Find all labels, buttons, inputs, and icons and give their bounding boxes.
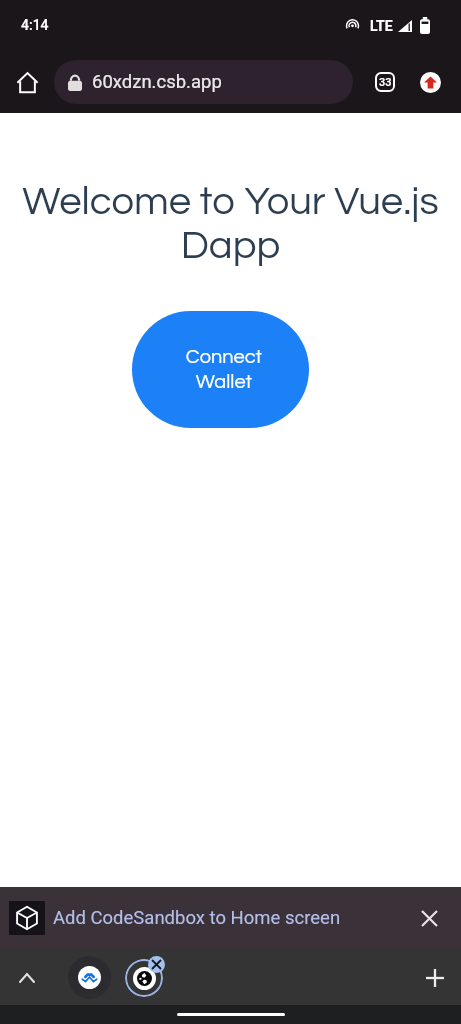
staticText: LTE: [370, 18, 393, 34]
button[interactable]: More options: [411, 63, 449, 101]
staticText: Connect Wallet: [179, 347, 269, 392]
button[interactable]: Expand toolbar: [5, 956, 48, 999]
button[interactable]: New tab: [413, 956, 456, 999]
staticText: 60xdzn.csb.app: [92, 71, 222, 93]
staticText: Welcome to Your Vue.js Dapp: [12, 181, 449, 266]
button[interactable]: Current tab: [121, 955, 166, 1000]
staticText: Add CodeSandbox to Home screen: [53, 907, 341, 929]
button[interactable]: 60xdzn.csb.app: [54, 60, 353, 104]
button[interactable]: Home: [8, 63, 46, 101]
button[interactable]: Tabs: [365, 62, 404, 101]
staticText: 33: [379, 76, 392, 89]
staticText: 4:14: [21, 17, 49, 33]
button[interactable]: App shortcut: [68, 956, 111, 999]
button[interactable]: Close: [405, 894, 453, 942]
button[interactable]: Connect Wallet: [132, 311, 309, 428]
